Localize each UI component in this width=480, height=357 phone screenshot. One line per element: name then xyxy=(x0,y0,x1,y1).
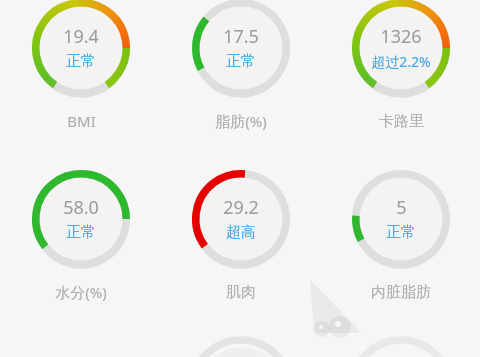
staticText: 5 xyxy=(396,195,407,219)
staticText: 超过2.2% xyxy=(371,52,431,71)
button[interactable]: 脂肪(%) xyxy=(192,0,290,97)
staticText: 正常 xyxy=(66,52,96,71)
staticText: 卡路里 xyxy=(379,112,424,131)
staticText: 正常 xyxy=(386,223,416,242)
staticText: 58.0 xyxy=(63,195,99,219)
staticText: 正常 xyxy=(226,52,256,71)
button[interactable]: 卡路里 xyxy=(352,0,450,97)
staticText: 17.5 xyxy=(223,24,259,48)
staticText: 29.2 xyxy=(223,195,259,219)
button[interactable]: 水分(%) xyxy=(32,170,130,268)
button[interactable]: BMI xyxy=(32,0,130,97)
staticText: BMI xyxy=(67,111,96,131)
staticText: 正常 xyxy=(66,223,96,242)
button[interactable]: 内脏脂肪 xyxy=(352,170,450,268)
staticText: 超高 xyxy=(226,223,256,242)
staticText: 水分(%) xyxy=(55,282,107,302)
staticText: 1326 xyxy=(380,24,422,48)
staticText: 19.4 xyxy=(63,24,99,48)
staticText: 内脏脂肪 xyxy=(371,283,431,302)
staticText: 肌肉 xyxy=(226,283,256,302)
staticText: 脂肪(%) xyxy=(215,111,267,131)
button[interactable]: 肌肉 xyxy=(192,170,290,268)
